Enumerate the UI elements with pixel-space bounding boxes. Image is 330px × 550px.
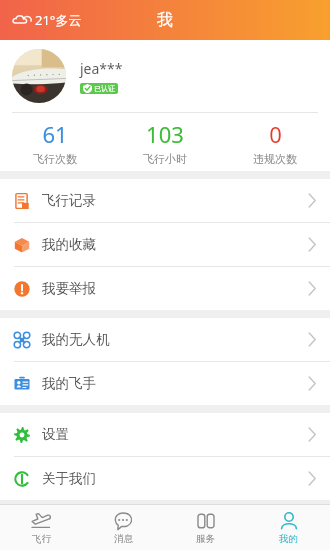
button[interactable]: jea*** [0, 40, 330, 112]
button[interactable]: 关于我们 [0, 457, 330, 500]
button[interactable]: 飞行记录 [0, 179, 330, 222]
staticText: 我 [157, 10, 173, 30]
button[interactable]: 服务 [164, 505, 247, 550]
staticText: 我的 [279, 533, 298, 545]
staticText: 关于我们 [42, 470, 96, 487]
button[interactable]: 103 [110, 113, 220, 171]
staticText: 消息 [114, 533, 133, 545]
staticText: 61 [42, 119, 68, 149]
button[interactable]: 我的飞手 [0, 362, 330, 405]
button[interactable]: 21°多云 [10, 7, 84, 33]
staticText: 103 [146, 119, 184, 149]
staticText: 21°多云 [35, 11, 82, 29]
staticText: 飞行小时 [143, 152, 187, 166]
button[interactable]: 消息 [82, 505, 164, 550]
staticText: 飞行次数 [33, 152, 77, 166]
button[interactable]: 我的 [247, 505, 330, 550]
button[interactable]: 我的无人机 [0, 318, 330, 361]
button[interactable]: 飞行 [0, 505, 82, 550]
staticText: 我的无人机 [42, 331, 110, 348]
button[interactable]: 0 [220, 113, 330, 171]
staticText: 飞行 [32, 533, 51, 545]
button[interactable]: 我要举报 [0, 267, 330, 310]
button[interactable]: 61 [0, 113, 110, 171]
staticText: 已认证 [94, 84, 115, 93]
staticText: 我要举报 [42, 280, 96, 297]
staticText: 0 [269, 119, 282, 149]
staticText: 违规次数 [253, 152, 297, 166]
staticText: jea*** [80, 59, 123, 78]
staticText: 设置 [42, 426, 69, 443]
button[interactable]: 我的收藏 [0, 223, 330, 266]
staticText: 我的飞手 [42, 375, 96, 392]
staticText: 服务 [196, 533, 215, 545]
staticText: 飞行记录 [42, 192, 96, 209]
staticText: 我的收藏 [42, 236, 96, 253]
button[interactable]: 设置 [0, 413, 330, 456]
